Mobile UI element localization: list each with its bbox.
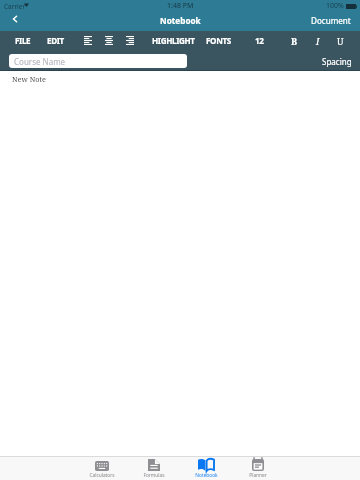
button[interactable]: HIGHLIGHT	[147, 31, 200, 50]
staticText: Spacing	[322, 56, 352, 67]
button[interactable]: New Note	[0, 71, 360, 84]
staticText: 100%	[326, 1, 344, 11]
staticText: B	[291, 35, 298, 47]
button[interactable]: Course Name	[9, 54, 187, 68]
staticText: Calculators	[89, 472, 115, 479]
button[interactable]: Spacing	[314, 53, 360, 70]
staticText: FILE	[15, 35, 31, 46]
button[interactable]: Document	[302, 11, 360, 30]
button[interactable]: Align left	[81, 32, 95, 48]
button[interactable]: 12	[250, 31, 269, 50]
button[interactable]: FONTS	[201, 31, 236, 50]
staticText: I	[316, 35, 320, 47]
staticText: U	[337, 35, 344, 47]
staticText: Document	[311, 15, 351, 26]
button[interactable]: Align right	[123, 32, 137, 48]
staticText: Notebook	[195, 472, 218, 479]
staticText: Course Name	[14, 56, 66, 67]
button[interactable]: B	[286, 31, 303, 51]
button[interactable]: U	[332, 31, 349, 51]
button[interactable]: Notebook	[180, 456, 232, 480]
button[interactable]: Back	[0, 12, 30, 31]
button[interactable]: EDIT	[42, 31, 69, 50]
button[interactable]: Formulas	[128, 456, 180, 480]
staticText: FONTS	[206, 35, 231, 46]
button[interactable]: Align center	[102, 32, 116, 48]
staticText: Notebook	[160, 15, 201, 26]
staticText: Formulas	[143, 472, 165, 479]
staticText: 12	[255, 35, 264, 46]
staticText: Carrier	[4, 2, 26, 11]
button[interactable]: Planner	[232, 456, 284, 480]
staticText: HIGHLIGHT	[152, 35, 195, 46]
button[interactable]: I	[311, 31, 325, 51]
staticText: 1:48 PM	[167, 1, 194, 11]
staticText: Planner	[249, 472, 267, 479]
staticText: New Note	[12, 74, 46, 84]
button[interactable]: FILE	[10, 31, 36, 50]
button[interactable]: Calculators	[76, 456, 128, 480]
staticText: EDIT	[47, 35, 64, 46]
